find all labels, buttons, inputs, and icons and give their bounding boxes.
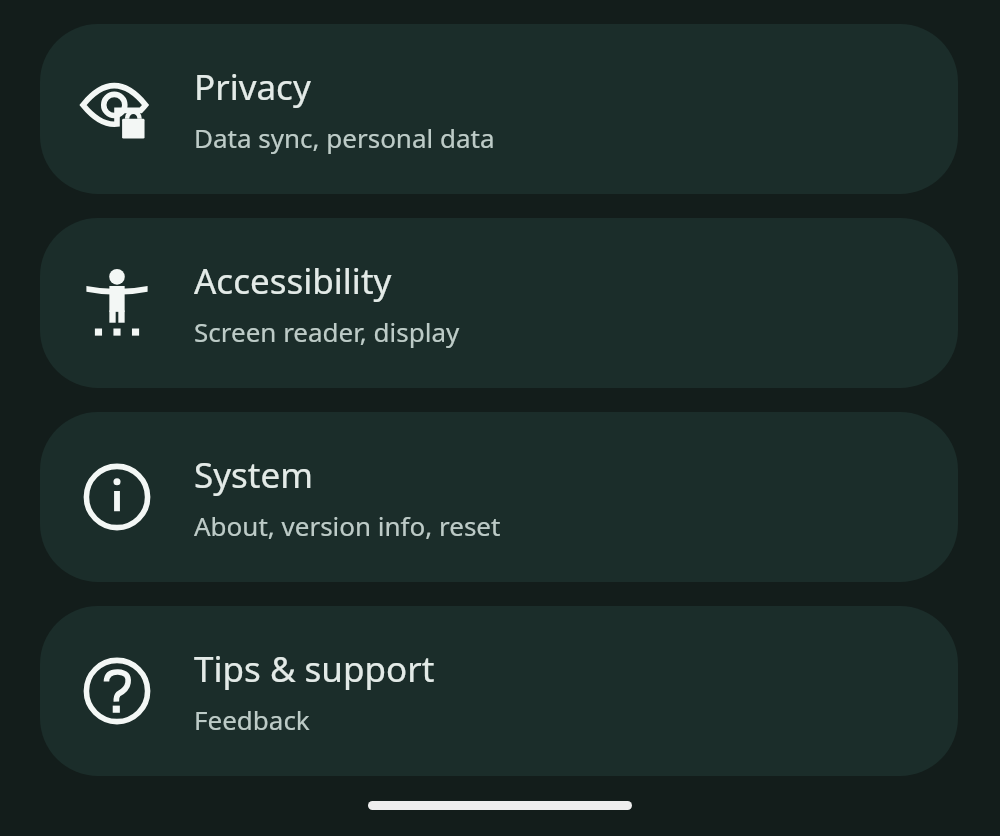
staticText: System bbox=[194, 451, 313, 499]
button[interactable]: Accessibility bbox=[40, 218, 958, 388]
staticText: Feedback bbox=[194, 702, 310, 737]
button[interactable]: Privacy bbox=[40, 24, 958, 194]
staticText: Screen reader, display bbox=[194, 314, 460, 349]
staticText: Tips & support bbox=[194, 645, 435, 693]
button[interactable]: System bbox=[40, 412, 958, 582]
staticText: Privacy bbox=[194, 63, 311, 111]
other: System bbox=[40, 463, 194, 531]
other: Privacy bbox=[40, 75, 194, 143]
staticText: Data sync, personal data bbox=[194, 120, 495, 155]
button[interactable]: Tips & support bbox=[40, 606, 958, 776]
staticText: About, version info, reset bbox=[194, 508, 501, 543]
other: Tips & support bbox=[40, 657, 194, 725]
staticText: Accessibility bbox=[194, 257, 392, 305]
other: Accessibility bbox=[40, 269, 194, 337]
